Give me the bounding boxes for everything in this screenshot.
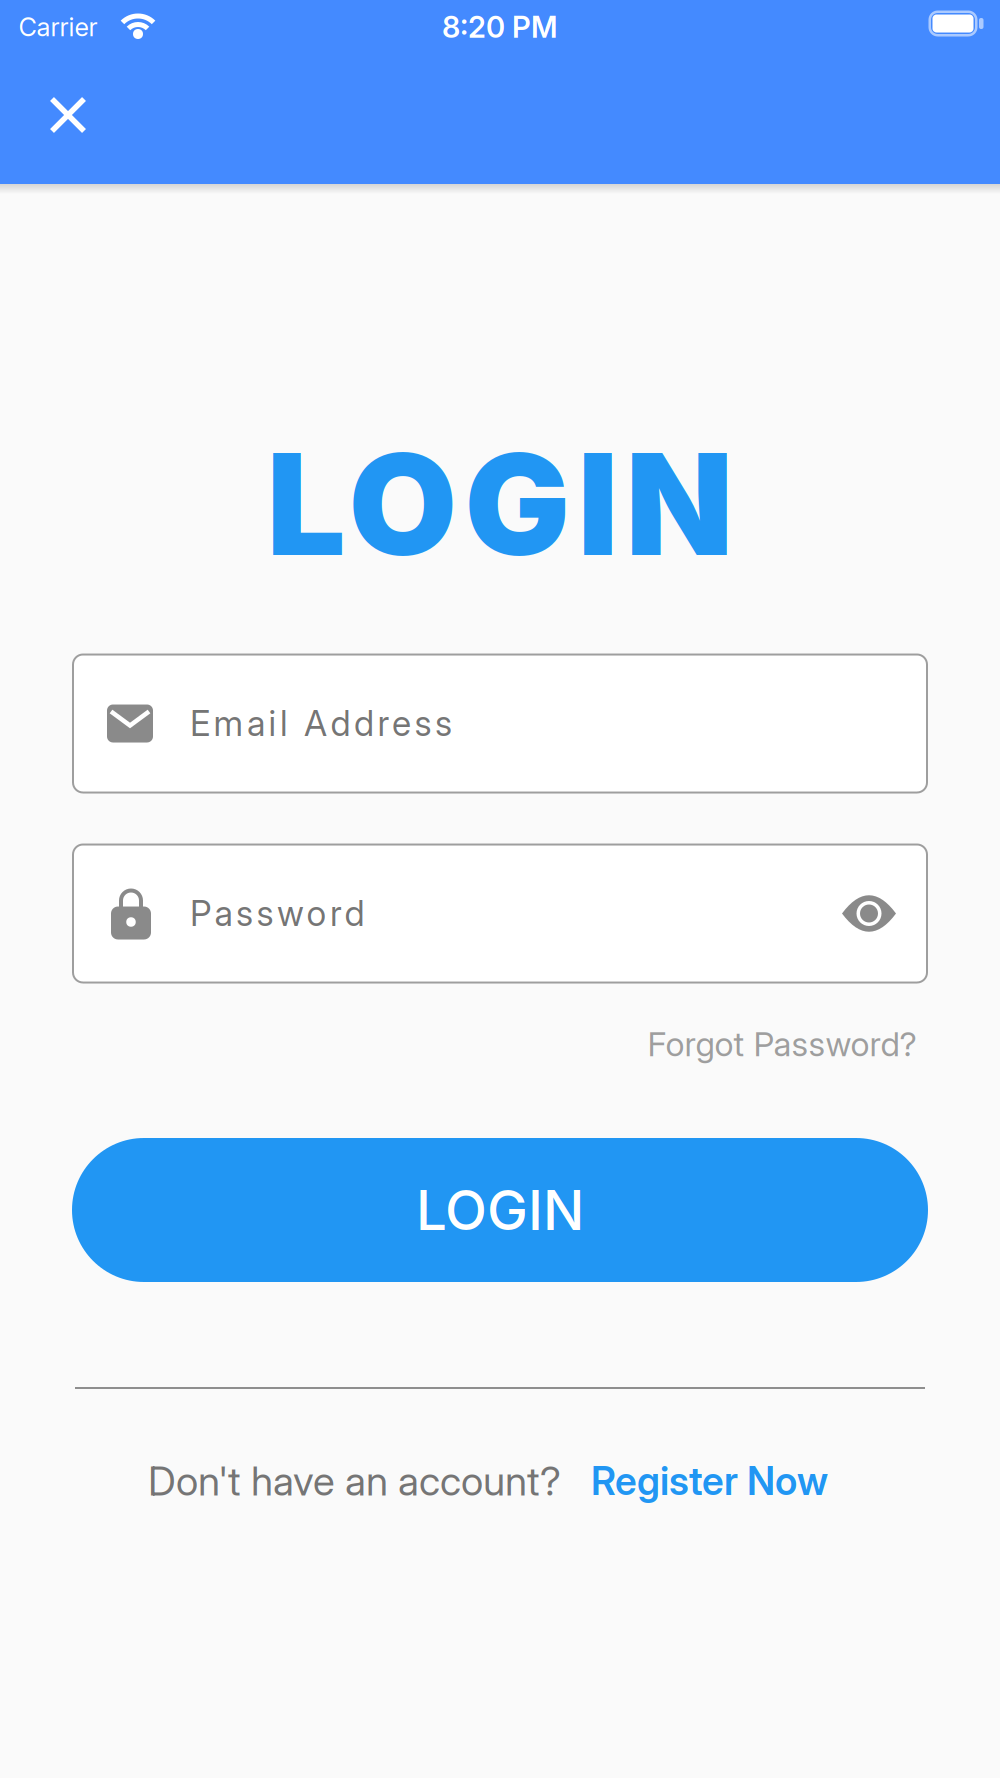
button[interactable]: Close — [32, 79, 104, 151]
button[interactable]: LOGIN — [72, 1138, 928, 1282]
button[interactable]: Forgot Password? — [647, 1024, 916, 1064]
staticText: Forgot Password? — [647, 1024, 916, 1064]
staticText: 8:20 PM — [442, 9, 558, 45]
staticText: LOGIN — [416, 1177, 584, 1243]
staticText: Password — [190, 892, 364, 934]
staticText: LOGIN — [266, 419, 733, 589]
staticText: Register Now — [591, 1458, 828, 1504]
button[interactable]: Show password — [842, 894, 896, 932]
staticText: Email Address — [190, 702, 452, 744]
button[interactable]: Register Now — [591, 1458, 828, 1504]
staticText: Don't have an account? — [148, 1457, 561, 1505]
staticText: Carrier — [18, 12, 97, 42]
